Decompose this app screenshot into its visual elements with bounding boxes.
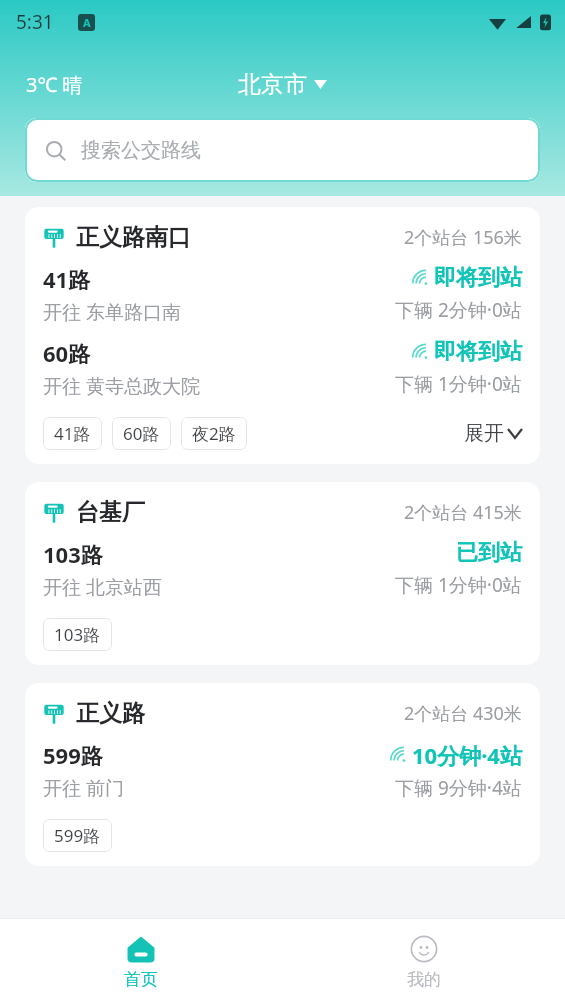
- staticText: 下辆 2分钟·0站: [395, 297, 522, 323]
- button[interactable]: 103路: [43, 618, 112, 651]
- button[interactable]: 3℃ 晴: [26, 71, 83, 98]
- button[interactable]: 搜索公交路线: [25, 118, 540, 182]
- button[interactable]: 我的: [401, 928, 447, 996]
- staticText: 5:31: [16, 9, 54, 35]
- staticText: 即将到站: [434, 338, 522, 366]
- staticText: 已到站: [456, 539, 522, 567]
- button[interactable]: 夜2路: [181, 417, 247, 450]
- button[interactable]: 正义路: [25, 683, 540, 866]
- staticText: 正义路: [76, 699, 145, 728]
- staticText: 正义路南口: [76, 223, 191, 252]
- staticText: 台基厂: [76, 498, 145, 527]
- staticText: 北京市: [238, 70, 307, 99]
- staticText: 首页: [124, 969, 158, 990]
- staticText: 10分钟·4站: [412, 740, 522, 770]
- staticText: 103路: [54, 623, 101, 646]
- staticText: 夜2路: [192, 422, 236, 445]
- staticText: 下辆 1分钟·0站: [395, 572, 522, 598]
- staticText: 开往 东单路口南: [43, 299, 181, 325]
- staticText: 开往 黄寺总政大院: [43, 373, 200, 399]
- staticText: 2个站台 156米: [404, 225, 522, 250]
- staticText: 即将到站: [434, 264, 522, 292]
- staticText: 60路: [43, 338, 91, 368]
- staticText: 开往 前门: [43, 775, 124, 801]
- button[interactable]: 正义路南口: [25, 207, 540, 464]
- button[interactable]: 展开: [464, 421, 522, 446]
- button[interactable]: 41路: [43, 417, 102, 450]
- staticText: 599路: [54, 824, 101, 847]
- staticText: 41路: [43, 264, 91, 294]
- staticText: 60路: [123, 422, 160, 445]
- button[interactable]: 599路: [43, 819, 112, 852]
- staticText: A: [83, 15, 91, 30]
- staticText: 下辆 1分钟·0站: [395, 371, 522, 397]
- button[interactable]: 台基厂: [25, 482, 540, 665]
- staticText: 下辆 9分钟·4站: [395, 775, 522, 801]
- staticText: 我的: [407, 969, 441, 990]
- staticText: 103路: [43, 539, 103, 569]
- staticText: 开往 北京站西: [43, 574, 162, 600]
- button[interactable]: 首页: [118, 928, 164, 996]
- button[interactable]: 北京市: [238, 70, 327, 99]
- staticText: 2个站台 415米: [404, 500, 522, 525]
- staticText: 599路: [43, 740, 103, 770]
- staticText: 搜索公交路线: [81, 138, 201, 163]
- staticText: 41路: [54, 422, 91, 445]
- staticText: 2个站台 430米: [404, 701, 522, 726]
- staticText: 展开: [464, 421, 504, 446]
- button[interactable]: 60路: [112, 417, 171, 450]
